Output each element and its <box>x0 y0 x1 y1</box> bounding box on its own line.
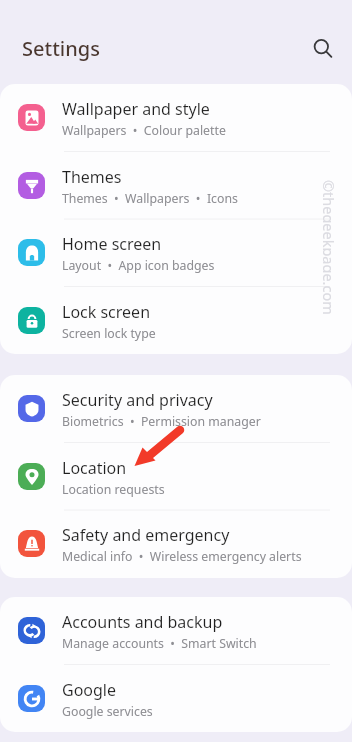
staticText: Manage accounts • Smart Switch <box>62 635 257 652</box>
button[interactable]: Google <box>0 665 352 732</box>
button[interactable]: Search <box>303 29 343 69</box>
staticText: Medical info • Wireless emergency alerts <box>62 548 302 565</box>
button[interactable]: Home screen <box>0 219 352 287</box>
staticText: Safety and emergency <box>62 524 230 546</box>
button[interactable]: Lock screen <box>0 287 352 354</box>
staticText: Home screen <box>62 233 162 255</box>
staticText: Security and privacy <box>62 389 213 411</box>
staticText: Location requests <box>62 481 165 498</box>
staticText: Layout • App icon badges <box>62 257 215 274</box>
staticText: Wallpaper and style <box>62 98 210 120</box>
staticText: Google services <box>62 703 153 720</box>
staticText: Google <box>62 679 117 701</box>
button[interactable]: Accounts and backup <box>0 597 352 665</box>
staticText: Location <box>62 457 127 479</box>
staticText: Screen lock type <box>62 325 156 342</box>
staticText: Themes <box>62 166 122 188</box>
button[interactable]: Location <box>0 443 352 511</box>
staticText: Biometrics • Permission manager <box>62 413 261 430</box>
button[interactable]: Security and privacy <box>0 375 352 443</box>
button[interactable]: Safety and emergency <box>0 510 352 578</box>
staticText: Accounts and backup <box>62 611 223 633</box>
staticText: Themes • Wallpapers • Icons <box>62 190 238 207</box>
staticText: Lock screen <box>62 301 151 323</box>
button[interactable]: Themes <box>0 152 352 220</box>
staticText: ©thegeekpage.com <box>323 180 339 315</box>
button[interactable]: Wallpaper and style <box>0 84 352 152</box>
staticText: Settings <box>22 35 100 62</box>
staticText: Wallpapers • Colour palette <box>62 122 226 139</box>
